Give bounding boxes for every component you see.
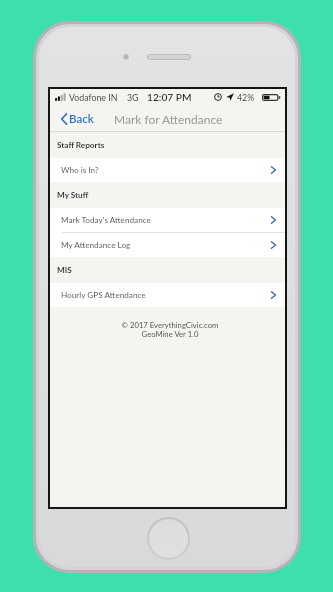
- staticText: Staff Reports: [57, 140, 105, 150]
- staticText: Back: [69, 112, 94, 126]
- staticText: Vodafone IN: [69, 92, 118, 103]
- staticText: 12:07 PM: [147, 91, 192, 103]
- button[interactable]: Back: [50, 106, 98, 132]
- staticText: My Attendance Log: [61, 240, 131, 250]
- button[interactable]: Home: [149, 519, 188, 558]
- button[interactable]: Hourly GPS Attendance: [50, 283, 285, 307]
- button[interactable]: Who is In?: [50, 158, 285, 182]
- staticText: My Stuff: [57, 190, 89, 200]
- button[interactable]: My Attendance Log: [50, 233, 285, 257]
- staticText: Who is In?: [61, 165, 99, 175]
- staticText: 3G: [127, 92, 139, 103]
- staticText: © 2017 EverythingCivic.com GeoMine Ver 1…: [55, 320, 285, 339]
- staticText: Mark Today's Attendance: [61, 215, 151, 225]
- staticText: 42%: [237, 92, 255, 103]
- staticText: Mark for Attendance: [114, 112, 223, 126]
- button[interactable]: Mark Today's Attendance: [50, 208, 285, 232]
- staticText: Hourly GPS Attendance: [61, 290, 146, 300]
- staticText: MIS: [57, 265, 72, 275]
